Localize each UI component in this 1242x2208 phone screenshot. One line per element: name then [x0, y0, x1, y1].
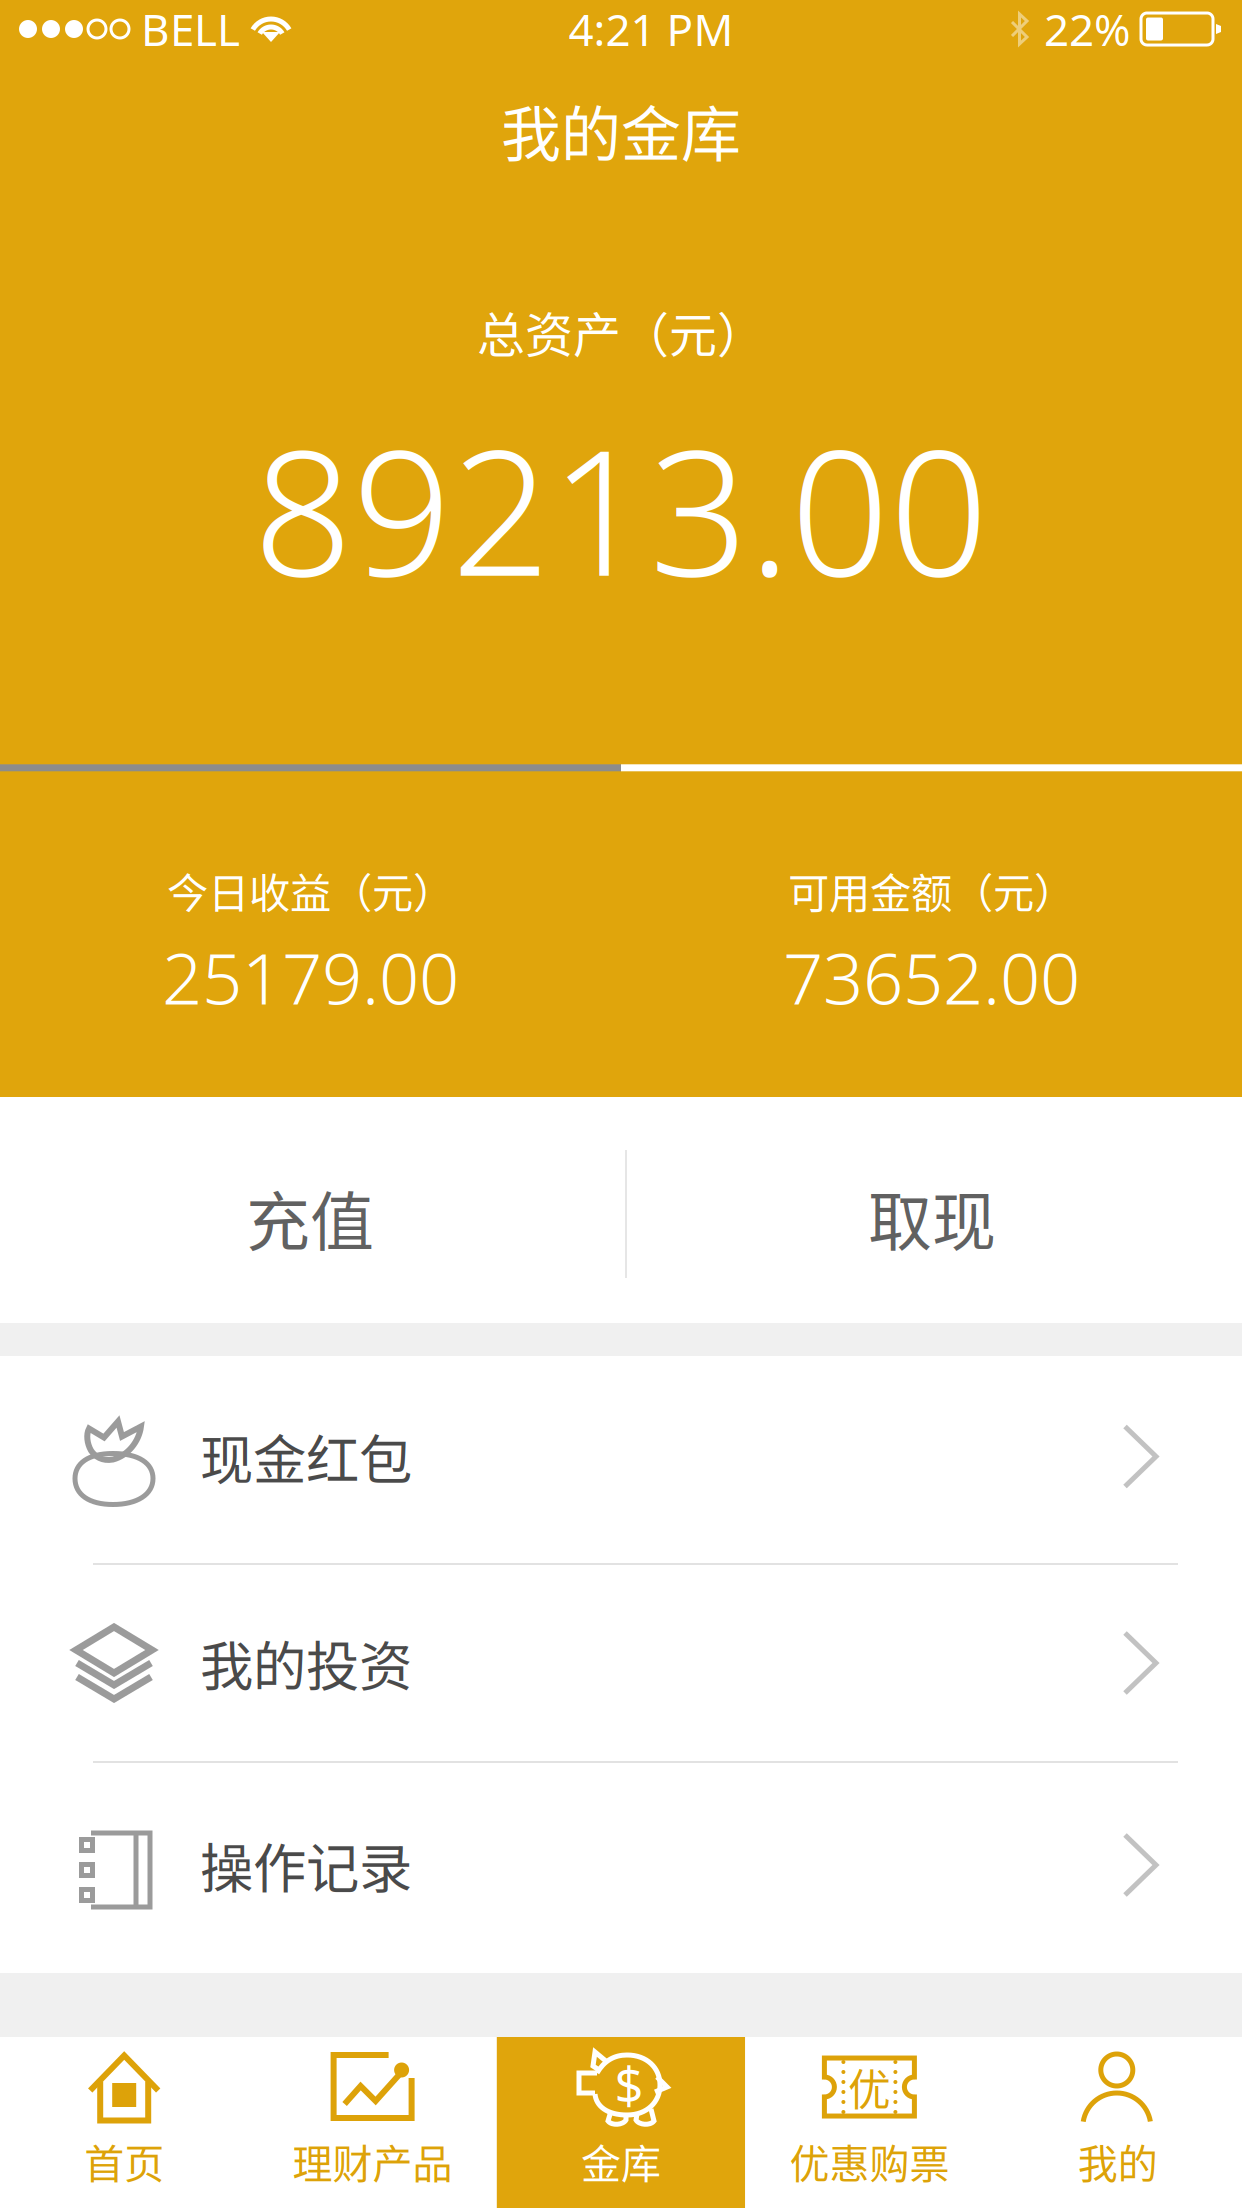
- staticText: 22%: [1044, 0, 1131, 58]
- button[interactable]: 我的投资: [0, 1565, 1242, 1763]
- staticText: BELL: [141, 0, 240, 58]
- staticText: 充值: [246, 1171, 374, 1263]
- button[interactable]: 我的: [994, 2037, 1242, 2208]
- button[interactable]: 优: [745, 2037, 994, 2208]
- staticText: 总资产（元）: [477, 297, 765, 366]
- button[interactable]: 取现: [622, 1097, 1242, 1323]
- button[interactable]: 充值: [0, 1097, 620, 1323]
- button[interactable]: 理财产品: [248, 2037, 497, 2208]
- button[interactable]: 现金红包: [0, 1356, 1242, 1565]
- staticText: 现金红包: [200, 1418, 412, 1495]
- staticText: 73652.00: [783, 930, 1080, 1024]
- button[interactable]: $: [497, 2037, 745, 2208]
- staticText: 首页: [84, 2132, 164, 2190]
- staticText: 理财产品: [293, 2132, 453, 2190]
- staticText: 优: [848, 2056, 891, 2118]
- staticText: 金库: [581, 2132, 661, 2190]
- staticText: 4:21 PM: [568, 0, 733, 58]
- staticText: 89213.00: [253, 393, 988, 624]
- staticText: 我的投资: [200, 1624, 412, 1702]
- staticText: 今日收益（元）: [167, 860, 454, 920]
- button[interactable]: 首页: [0, 2037, 248, 2208]
- staticText: $: [614, 2051, 643, 2119]
- staticText: 取现: [868, 1171, 996, 1263]
- button[interactable]: 操作记录: [0, 1763, 1242, 1965]
- staticText: 我的金库: [501, 87, 741, 174]
- staticText: 操作记录: [200, 1826, 412, 1904]
- staticText: 可用金额（元）: [788, 860, 1075, 920]
- staticText: 25179.00: [162, 930, 459, 1024]
- staticText: 优惠购票: [789, 2132, 949, 2190]
- staticText: 我的: [1078, 2132, 1158, 2190]
